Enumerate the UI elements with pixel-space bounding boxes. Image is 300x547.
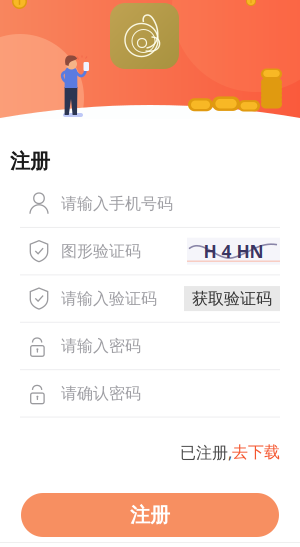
staticText: 去下载 (232, 442, 280, 462)
button[interactable]: 获取验证码 (184, 286, 280, 311)
staticText: 注册 (130, 503, 170, 527)
staticText: 请输入验证码 (61, 289, 157, 308)
staticText: 请输入密码 (61, 336, 141, 356)
button[interactable]: 注册 (21, 493, 279, 537)
button[interactable]: Refresh captcha (187, 238, 280, 265)
staticText: 获取验证码 (192, 289, 272, 308)
staticText: H 4 HN (203, 240, 263, 263)
staticText: 已注册, (180, 442, 232, 463)
staticText: 图形验证码 (61, 241, 141, 261)
button[interactable]: 去下载 (232, 442, 280, 462)
staticText: 请确认密码 (61, 383, 141, 403)
staticText: 请输入手机号码 (61, 194, 173, 214)
staticText: 注册 (10, 149, 50, 174)
